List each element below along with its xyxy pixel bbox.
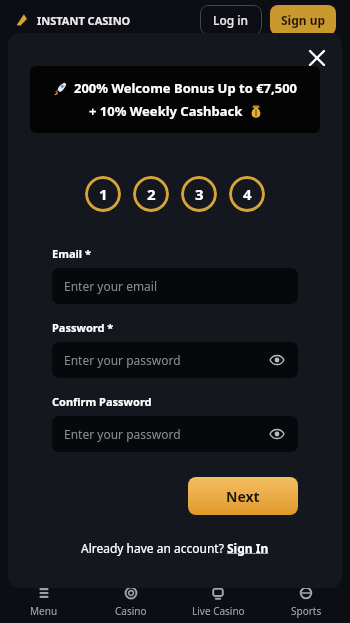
staticText: Enter your password [64, 426, 181, 442]
staticText: 2 [147, 184, 156, 204]
button[interactable]: Live Casino [174, 585, 262, 618]
button[interactable]: Sports [262, 585, 350, 618]
button[interactable]: Log in [200, 5, 262, 35]
staticText: Log in [213, 12, 249, 28]
staticText: 1 [99, 184, 108, 204]
staticText: Casino [115, 604, 147, 618]
staticText: Next [226, 487, 260, 506]
staticText: 200% Welcome Bonus Up to €7,500 [74, 79, 298, 97]
staticText: Sports [291, 604, 322, 618]
staticText: Already have an account? Sign In [81, 540, 269, 556]
button[interactable]: Sign up [270, 5, 336, 35]
staticText: Sign up [281, 12, 326, 28]
staticText: INSTANT CASINO [37, 13, 131, 28]
button[interactable]: Show password [266, 423, 288, 445]
staticText: Live Casino [192, 604, 245, 618]
staticText: 4 [243, 184, 252, 204]
staticText: Menu [30, 604, 58, 618]
button[interactable]: Show password [266, 349, 288, 371]
staticText: 3 [195, 184, 204, 204]
staticText: Email * [52, 246, 91, 261]
staticText: Enter your password [64, 352, 181, 368]
staticText: Password * [52, 320, 114, 335]
button[interactable]: Menu [0, 585, 87, 618]
staticText: Confirm Password [52, 394, 152, 409]
staticText: + 10% Weekly Cashback [89, 102, 243, 120]
button[interactable]: Casino [87, 585, 174, 618]
button[interactable]: Next [188, 477, 298, 515]
button[interactable]: Enter your password [52, 416, 298, 452]
button[interactable]: Enter your password [52, 342, 298, 378]
button[interactable]: Already have an account? Sign In [81, 540, 269, 556]
button[interactable]: Close [304, 45, 330, 71]
button[interactable]: Enter your email [52, 268, 298, 304]
staticText: Enter your email [64, 278, 158, 294]
button[interactable]: 3 [181, 176, 217, 212]
button[interactable]: 2 [133, 176, 169, 212]
button[interactable]: 1 [85, 176, 121, 212]
button[interactable]: 4 [229, 176, 265, 212]
